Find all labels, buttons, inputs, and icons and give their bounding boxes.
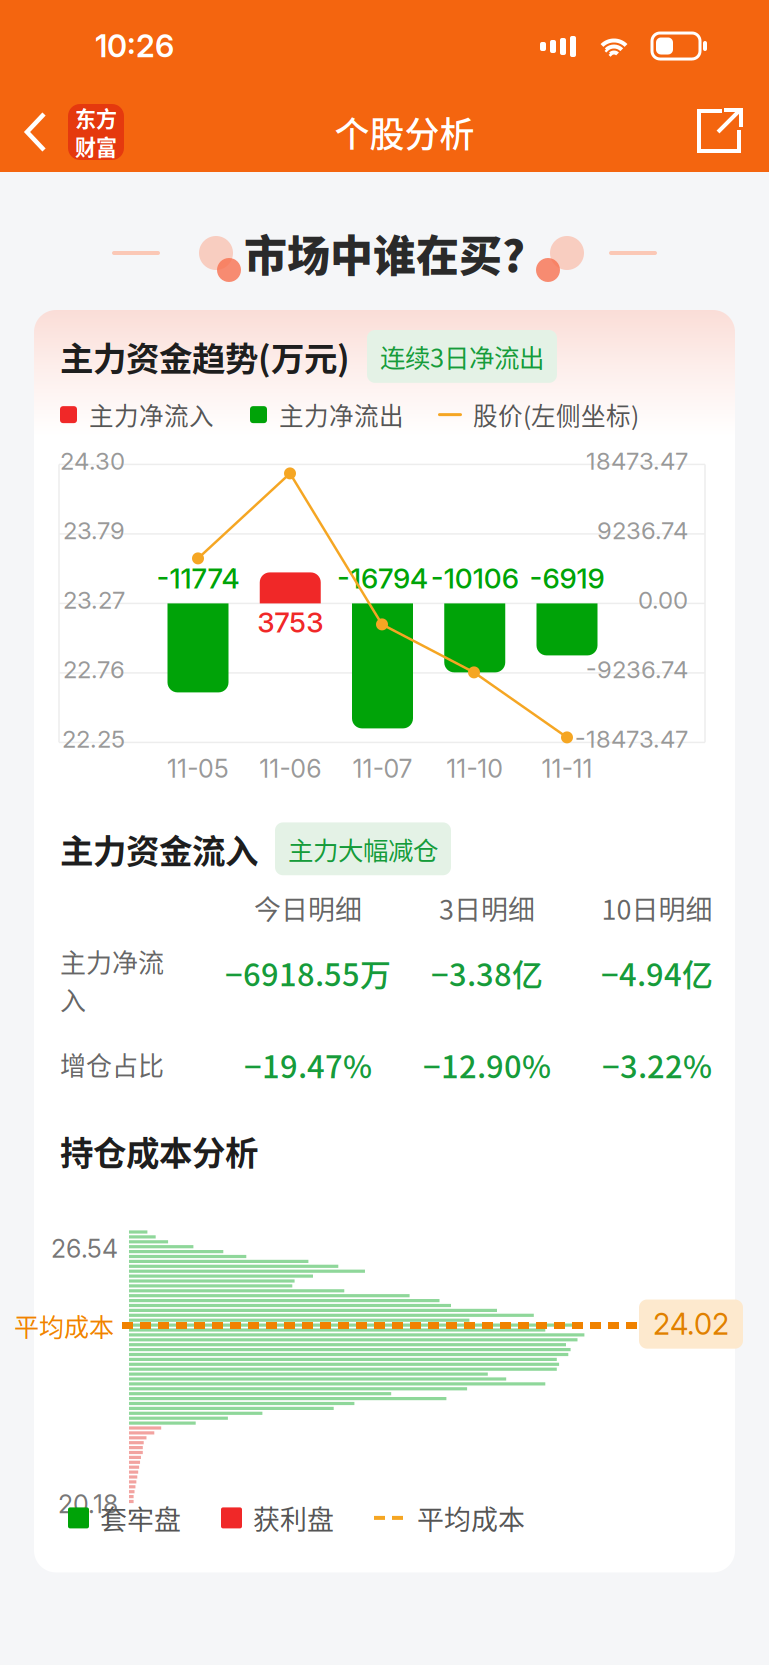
staticText: 主力资金流入 [60,825,258,873]
staticText: 个股分析 [334,107,474,157]
staticText: 股价(左侧坐标) [473,397,639,432]
staticText: 财富 [75,131,117,161]
staticText: −4.94亿 [601,950,713,995]
staticText: -9236.74 [586,655,688,684]
staticText: −12.90% [423,1042,551,1087]
button[interactable]: 返回 [0,92,138,172]
staticText: −6918.55万 [225,950,391,995]
staticText: 20.18 [58,1489,118,1519]
staticText: 主力资金趋势(万元) [60,332,350,381]
staticText: 连续3日净流出 [380,338,544,375]
staticText: 主力净流 入 [60,942,164,1018]
staticText: 22.76 [63,655,125,684]
staticText: 11-05 [167,753,229,784]
staticText: 0.00 [638,585,688,614]
staticText: −3.38亿 [431,950,543,995]
staticText: −19.47% [244,1042,372,1087]
staticText: 23.79 [63,516,125,545]
staticText: 11-10 [446,753,503,784]
staticText: 套牢盘 [100,1498,181,1537]
staticText: 24.02 [653,1306,729,1342]
staticText: 18473.47 [586,446,688,475]
staticText: 10:26 [95,27,174,65]
staticText: 持仓成本分析 [60,1126,258,1175]
staticText: 22.25 [62,724,125,753]
button[interactable]: 分享 [671,92,769,172]
staticText: 23.27 [63,585,125,614]
staticText: 11-06 [259,753,321,784]
staticText: 3753 [257,605,323,639]
staticText: −3.22% [602,1042,712,1087]
staticText: -10106 [431,561,519,595]
staticText: 市场中谁在买? [244,222,525,284]
staticText: 获利盘 [253,1498,334,1537]
staticText: 10日明细 [601,888,712,927]
staticText: -11774 [156,561,239,595]
staticText: 11-11 [541,753,592,784]
staticText: -18473.47 [575,724,688,753]
staticText: -6919 [529,561,604,595]
staticText: 平均成本 [14,1307,114,1344]
staticText: 26.54 [51,1233,118,1264]
staticText: 平均成本 [417,1498,525,1537]
staticText: 主力净流出 [279,397,404,432]
staticText: -16794 [337,561,428,595]
staticText: 主力大幅减仓 [288,830,438,867]
staticText: 今日明细 [254,888,362,927]
staticText: 9236.74 [597,516,688,545]
staticText: 增仓占比 [60,1045,164,1083]
staticText: 3日明细 [439,888,535,927]
staticText: 主力净流入 [89,397,214,432]
staticText: 11-07 [352,753,412,784]
staticText: 东方 [75,102,117,133]
staticText: 24.30 [60,446,125,475]
